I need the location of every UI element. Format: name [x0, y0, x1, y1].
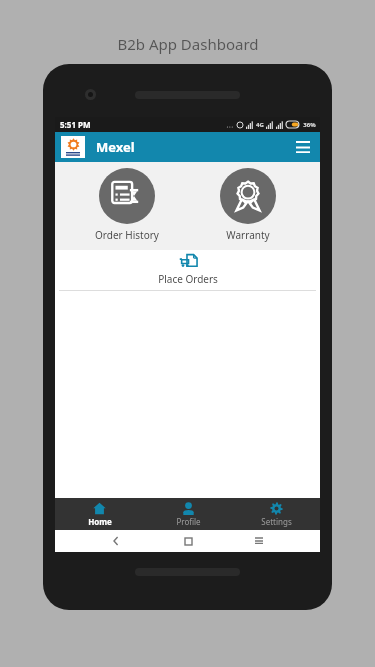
button[interactable]: Warranty — [198, 168, 298, 242]
button[interactable]: Profile — [144, 498, 232, 530]
staticText: Mexel — [96, 138, 135, 156]
staticText: Order History — [95, 228, 159, 242]
button[interactable]: Recents — [249, 531, 269, 551]
button[interactable]: Settings — [232, 498, 320, 530]
staticText: Home — [88, 516, 112, 527]
staticText: Place Orders — [158, 272, 218, 286]
button[interactable]: Order History — [77, 168, 177, 242]
button[interactable]: Place Orders — [59, 250, 316, 290]
staticText: B2b App Dashboard — [117, 34, 259, 54]
staticText: Settings — [261, 516, 292, 527]
staticText: 5:51 PM — [60, 119, 91, 130]
button[interactable]: Home — [178, 531, 198, 551]
button[interactable]: Back — [106, 531, 126, 551]
staticText: 4G — [256, 121, 264, 129]
button[interactable]: Menu — [292, 136, 314, 158]
button[interactable]: Home — [55, 498, 144, 530]
staticText: Profile — [176, 516, 201, 527]
staticText: 36% — [303, 121, 316, 129]
staticText: Warranty — [226, 228, 270, 242]
button[interactable]: Logo — [61, 136, 85, 158]
